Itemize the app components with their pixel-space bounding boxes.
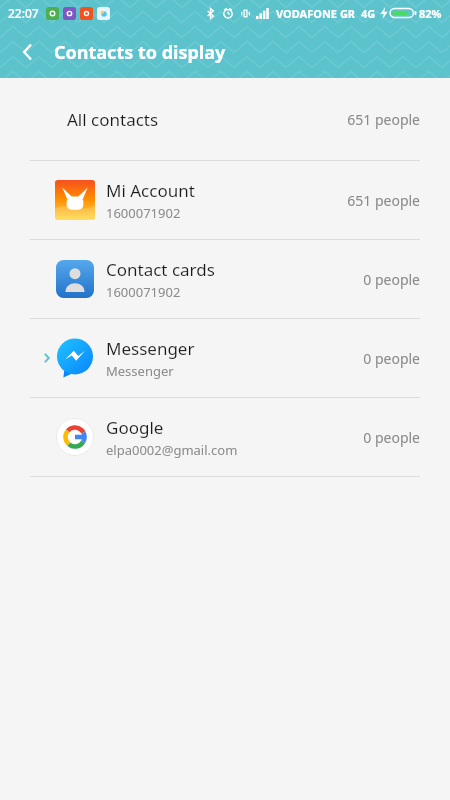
staticText: Contact cards	[106, 258, 215, 281]
staticText: 1600071902	[106, 283, 181, 301]
staticText: All contacts	[67, 108, 159, 131]
staticText: Messenger	[106, 362, 174, 380]
staticText: Mi Account	[106, 179, 195, 202]
button[interactable]: Messenger	[0, 319, 450, 397]
button[interactable]: Contact cards	[0, 240, 450, 318]
staticText: 0 people	[363, 428, 420, 447]
button[interactable]: Back	[8, 32, 48, 72]
staticText: 22:07	[8, 5, 39, 21]
button[interactable]: Mi Account	[0, 161, 450, 239]
staticText: 82%	[419, 6, 442, 21]
staticText: Contacts to display	[54, 40, 226, 65]
staticText: 4G	[361, 6, 376, 21]
staticText: 651 people	[347, 191, 420, 210]
staticText: 0 people	[363, 270, 420, 289]
staticText: 1600071902	[106, 204, 181, 222]
staticText: Google	[106, 416, 164, 439]
button[interactable]: All contacts	[0, 78, 450, 160]
button[interactable]: Google	[0, 398, 450, 476]
staticText: 651 people	[347, 110, 420, 129]
staticText: VODAFONE GR	[276, 6, 356, 21]
staticText: 0 people	[363, 349, 420, 368]
staticText: elpa0002@gmail.com	[106, 441, 238, 459]
staticText: Messenger	[106, 337, 195, 360]
